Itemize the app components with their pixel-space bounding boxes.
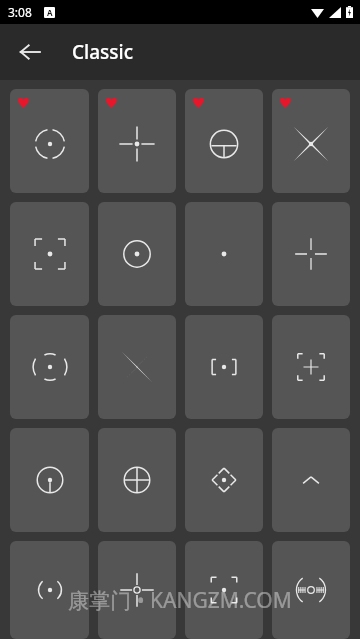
button[interactable]: Reticle 7 [272,202,350,306]
button[interactable]: Reticle 5 [98,202,176,306]
button[interactable]: Reticle 19 [272,541,350,639]
button[interactable]: Reticle 4 [10,202,89,306]
button[interactable]: Reticle 9 [98,315,176,419]
button[interactable]: Reticle 15 [272,428,350,532]
staticText: 康掌门 • KANGZM.COM [68,586,292,615]
button[interactable]: Reticle 10 [185,315,263,419]
button[interactable]: Reticle 14 [185,428,263,532]
button[interactable]: Reticle 18 [185,541,263,639]
button[interactable]: Reticle 8 [10,315,89,419]
button[interactable]: Reticle 12 [10,428,89,532]
button[interactable]: Reticle 6 [185,202,263,306]
button[interactable]: Reticle 13 [98,428,176,532]
button[interactable]: Back [8,30,52,74]
button[interactable]: Reticle 17 [98,541,176,639]
staticText: Classic [72,39,133,65]
button[interactable]: Reticle 2 [185,89,263,193]
button[interactable]: Reticle 0 [10,89,89,193]
button[interactable]: Reticle 3 [272,89,350,193]
staticText: 3:08 [8,4,32,20]
button[interactable]: Reticle 1 [98,89,176,193]
staticText: A [47,7,53,18]
button[interactable]: Reticle 16 [10,541,89,639]
button[interactable]: Reticle 11 [272,315,350,419]
